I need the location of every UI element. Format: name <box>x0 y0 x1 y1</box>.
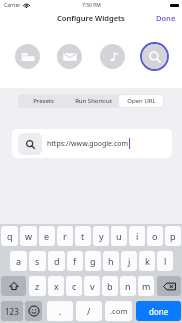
staticText: / <box>87 305 91 317</box>
staticText: .com <box>110 306 128 316</box>
staticText: 123 <box>5 306 19 317</box>
staticText: z <box>35 280 40 292</box>
button[interactable]: . <box>47 301 73 321</box>
staticText: m <box>142 280 151 292</box>
staticText: l <box>164 255 167 267</box>
button[interactable]: j <box>121 251 137 271</box>
staticText: Configure Widgets <box>57 13 125 23</box>
staticText: q <box>7 230 13 242</box>
staticText: p <box>170 230 176 242</box>
button[interactable]: w <box>20 226 37 246</box>
button[interactable]: l <box>157 251 173 271</box>
button[interactable]: Folder widget <box>13 42 42 71</box>
button[interactable]: d <box>48 251 65 271</box>
button[interactable]: Shift <box>1 276 26 296</box>
button[interactable]: a <box>10 251 27 271</box>
button[interactable]: f <box>67 251 83 271</box>
button[interactable]: s <box>29 251 46 271</box>
button[interactable]: 123 <box>1 301 23 321</box>
staticText: Run Shortcut <box>75 97 112 105</box>
button[interactable]: p <box>165 226 181 246</box>
button[interactable]: Search widget <box>140 42 169 71</box>
button[interactable]: done <box>136 301 181 321</box>
button[interactable]: m <box>138 276 154 296</box>
staticText: d <box>54 255 60 267</box>
button[interactable]: k <box>139 251 155 271</box>
staticText: x <box>54 280 59 292</box>
staticText: s <box>35 255 40 267</box>
button[interactable]: o <box>147 226 163 246</box>
staticText: e <box>44 230 50 242</box>
staticText: n <box>125 280 131 292</box>
button[interactable]: Run Shortcut <box>67 95 119 107</box>
staticText: w <box>25 230 33 242</box>
staticText: h <box>108 255 114 267</box>
staticText: v <box>90 280 95 292</box>
button[interactable]: Open URL <box>119 95 163 107</box>
button[interactable]: i <box>129 226 145 246</box>
staticText: g <box>90 255 96 267</box>
staticText: b <box>107 280 113 292</box>
button[interactable]: t <box>75 226 91 246</box>
button[interactable]: h <box>103 251 119 271</box>
staticText: o <box>152 230 158 242</box>
staticText: Open URL <box>127 97 156 105</box>
button[interactable]: g <box>85 251 101 271</box>
staticText: Presets <box>33 97 54 105</box>
staticText: f <box>73 255 77 267</box>
button[interactable]: Done <box>150 10 182 26</box>
button[interactable]: e <box>39 226 55 246</box>
staticText: t <box>81 230 85 242</box>
staticText: . <box>59 305 62 317</box>
staticText: Done <box>156 13 176 23</box>
button[interactable]: v <box>84 276 100 296</box>
staticText: y <box>99 230 104 242</box>
button[interactable]: z <box>29 276 46 296</box>
button[interactable]: Music widget <box>98 42 127 71</box>
button[interactable]: / <box>76 301 102 321</box>
staticText: https://www.google.com <box>47 139 129 149</box>
button[interactable]: Emoji keyboard <box>25 301 42 321</box>
button[interactable]: Backspace <box>157 276 181 296</box>
staticText: Carrier <box>4 2 21 9</box>
staticText: a <box>16 255 22 267</box>
button[interactable]: q <box>1 226 18 246</box>
button[interactable]: u <box>111 226 127 246</box>
staticText: i <box>136 230 139 242</box>
button[interactable]: Search <box>18 133 42 155</box>
staticText: 7:50 PM <box>82 2 101 9</box>
button[interactable]: r <box>57 226 73 246</box>
staticText: j <box>128 255 131 267</box>
button[interactable]: x <box>48 276 64 296</box>
staticText: k <box>145 255 150 267</box>
button[interactable]: Mail widget <box>55 42 84 71</box>
button[interactable]: c <box>66 276 82 296</box>
button[interactable]: b <box>102 276 118 296</box>
staticText: c <box>72 280 77 292</box>
button[interactable]: y <box>93 226 109 246</box>
staticText: u <box>116 230 122 242</box>
button[interactable]: .com <box>105 301 132 321</box>
staticText: done <box>149 306 169 317</box>
staticText: r <box>63 230 67 242</box>
button[interactable]: n <box>120 276 136 296</box>
button[interactable]: Presets <box>19 95 67 107</box>
